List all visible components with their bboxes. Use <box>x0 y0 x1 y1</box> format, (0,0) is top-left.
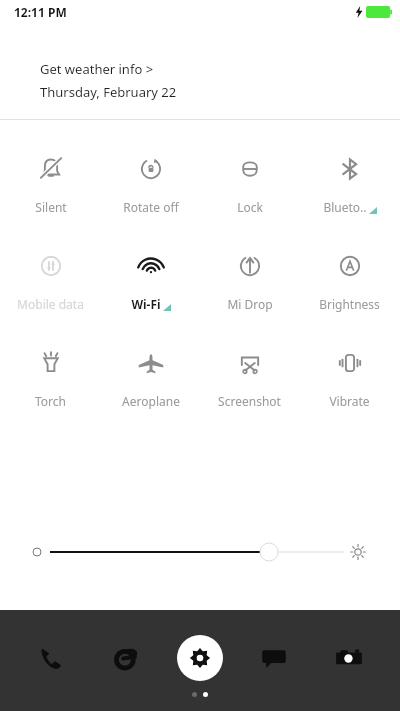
button[interactable]: Wi-Fi <box>102 247 199 314</box>
button[interactable]: Settings <box>177 635 223 681</box>
staticText: Screenshot <box>218 393 281 409</box>
staticText: Torch <box>35 393 66 409</box>
button[interactable]: Brightness <box>301 247 398 314</box>
button[interactable]: Screenshot <box>201 344 298 411</box>
button[interactable]: Vibrate <box>301 344 398 411</box>
staticText: Vibrate <box>329 393 370 409</box>
button[interactable]: Rotate off <box>102 150 199 217</box>
staticText: Lock <box>237 199 263 215</box>
button[interactable] <box>0 532 400 572</box>
staticText: Wi-Fi <box>131 296 161 312</box>
button[interactable]: Browser <box>103 635 149 681</box>
button[interactable]: Mobile data <box>2 247 99 314</box>
staticText: Rotate off <box>123 199 179 215</box>
button[interactable]: Messages <box>251 635 297 681</box>
button[interactable]: Phone <box>28 635 74 681</box>
button[interactable]: Lock <box>201 150 298 217</box>
staticText: Thursday, February 22 <box>40 83 177 101</box>
button[interactable]: Silent <box>2 150 99 217</box>
staticText: Silent <box>35 199 67 215</box>
staticText: Get weather info > <box>40 60 154 78</box>
staticText: 12:11 PM <box>14 4 67 20</box>
button[interactable]: Get weather info > <box>0 58 400 103</box>
button[interactable]: Aeroplane <box>102 344 199 411</box>
staticText: Brightness <box>319 296 380 312</box>
staticText: Blueto.. <box>323 199 367 215</box>
button[interactable]: Torch <box>2 344 99 411</box>
button[interactable]: Blueto.. <box>301 150 398 217</box>
staticText: Mi Drop <box>227 296 273 312</box>
button[interactable]: Mi Drop <box>201 247 298 314</box>
staticText: Aeroplane <box>122 393 180 409</box>
staticText: Mobile data <box>17 296 84 312</box>
button[interactable]: Camera <box>326 635 372 681</box>
